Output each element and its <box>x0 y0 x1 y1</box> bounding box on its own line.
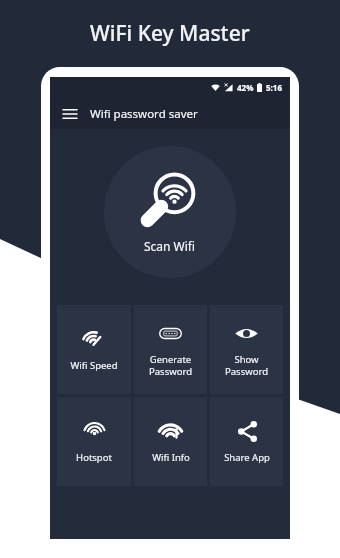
staticText: Share App <box>224 451 270 464</box>
staticText: WiFi Key Master <box>90 19 250 48</box>
button[interactable]: Wifi Speed <box>57 305 131 394</box>
button[interactable]: Share App <box>210 397 283 486</box>
staticText: Wifi Info <box>152 451 190 464</box>
staticText: Hotspot <box>76 451 112 464</box>
staticText: Show Password <box>225 353 268 378</box>
staticText: 42% <box>237 82 254 93</box>
button[interactable]: Scan Wifi <box>104 146 236 278</box>
button[interactable]: Wifi Info <box>134 397 207 486</box>
staticText: Scan Wifi <box>144 238 196 254</box>
button[interactable]: Open navigation menu <box>61 105 79 123</box>
button[interactable]: Generate Password <box>134 305 207 394</box>
button[interactable]: Show Password <box>210 305 283 394</box>
button[interactable]: Hotspot <box>57 397 131 486</box>
staticText: Wifi Speed <box>70 359 118 372</box>
staticText: Generate Password <box>149 353 192 378</box>
button[interactable]: Open navigation menu <box>50 98 290 129</box>
staticText: 5:16 <box>266 82 282 93</box>
staticText: Wifi password saver <box>90 106 198 122</box>
